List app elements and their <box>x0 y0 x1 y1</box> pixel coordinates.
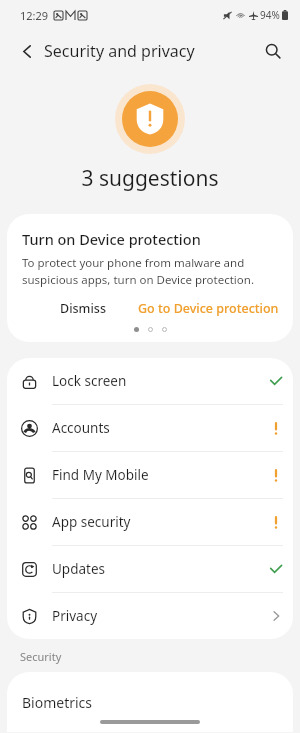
staticText: Go to Device protection <box>138 300 279 317</box>
button[interactable]: Updates <box>7 546 293 592</box>
staticText: Biometrics <box>22 693 93 712</box>
button[interactable]: Biometrics <box>7 672 293 732</box>
button[interactable]: Back <box>10 34 44 68</box>
button[interactable]: Search <box>256 34 290 68</box>
staticText: Security and privacy <box>44 40 195 62</box>
button[interactable]: App security <box>7 499 293 545</box>
staticText: Security <box>20 649 62 664</box>
button[interactable]: Find My Mobile <box>7 452 293 498</box>
staticText: App security <box>52 513 131 531</box>
staticText: Privacy <box>52 607 98 625</box>
button[interactable]: Accounts <box>7 405 293 451</box>
button[interactable]: Privacy <box>7 593 293 639</box>
staticText: Turn on Device protection <box>22 229 201 249</box>
staticText: Dismiss <box>60 300 106 317</box>
staticText: Updates <box>52 560 106 578</box>
staticText: To protect your phone from malware and s… <box>22 255 254 287</box>
staticText: Accounts <box>52 419 110 437</box>
staticText: Lock screen <box>52 372 127 390</box>
staticText: 12:29 <box>20 8 49 23</box>
button[interactable]: Go to Device protection <box>132 296 285 321</box>
button[interactable]: Dismiss <box>52 296 114 321</box>
staticText: Find My Mobile <box>52 466 149 484</box>
button[interactable]: Lock screen <box>7 358 293 404</box>
staticText: 94% <box>260 8 280 22</box>
staticText: 3 suggestions <box>0 164 300 193</box>
